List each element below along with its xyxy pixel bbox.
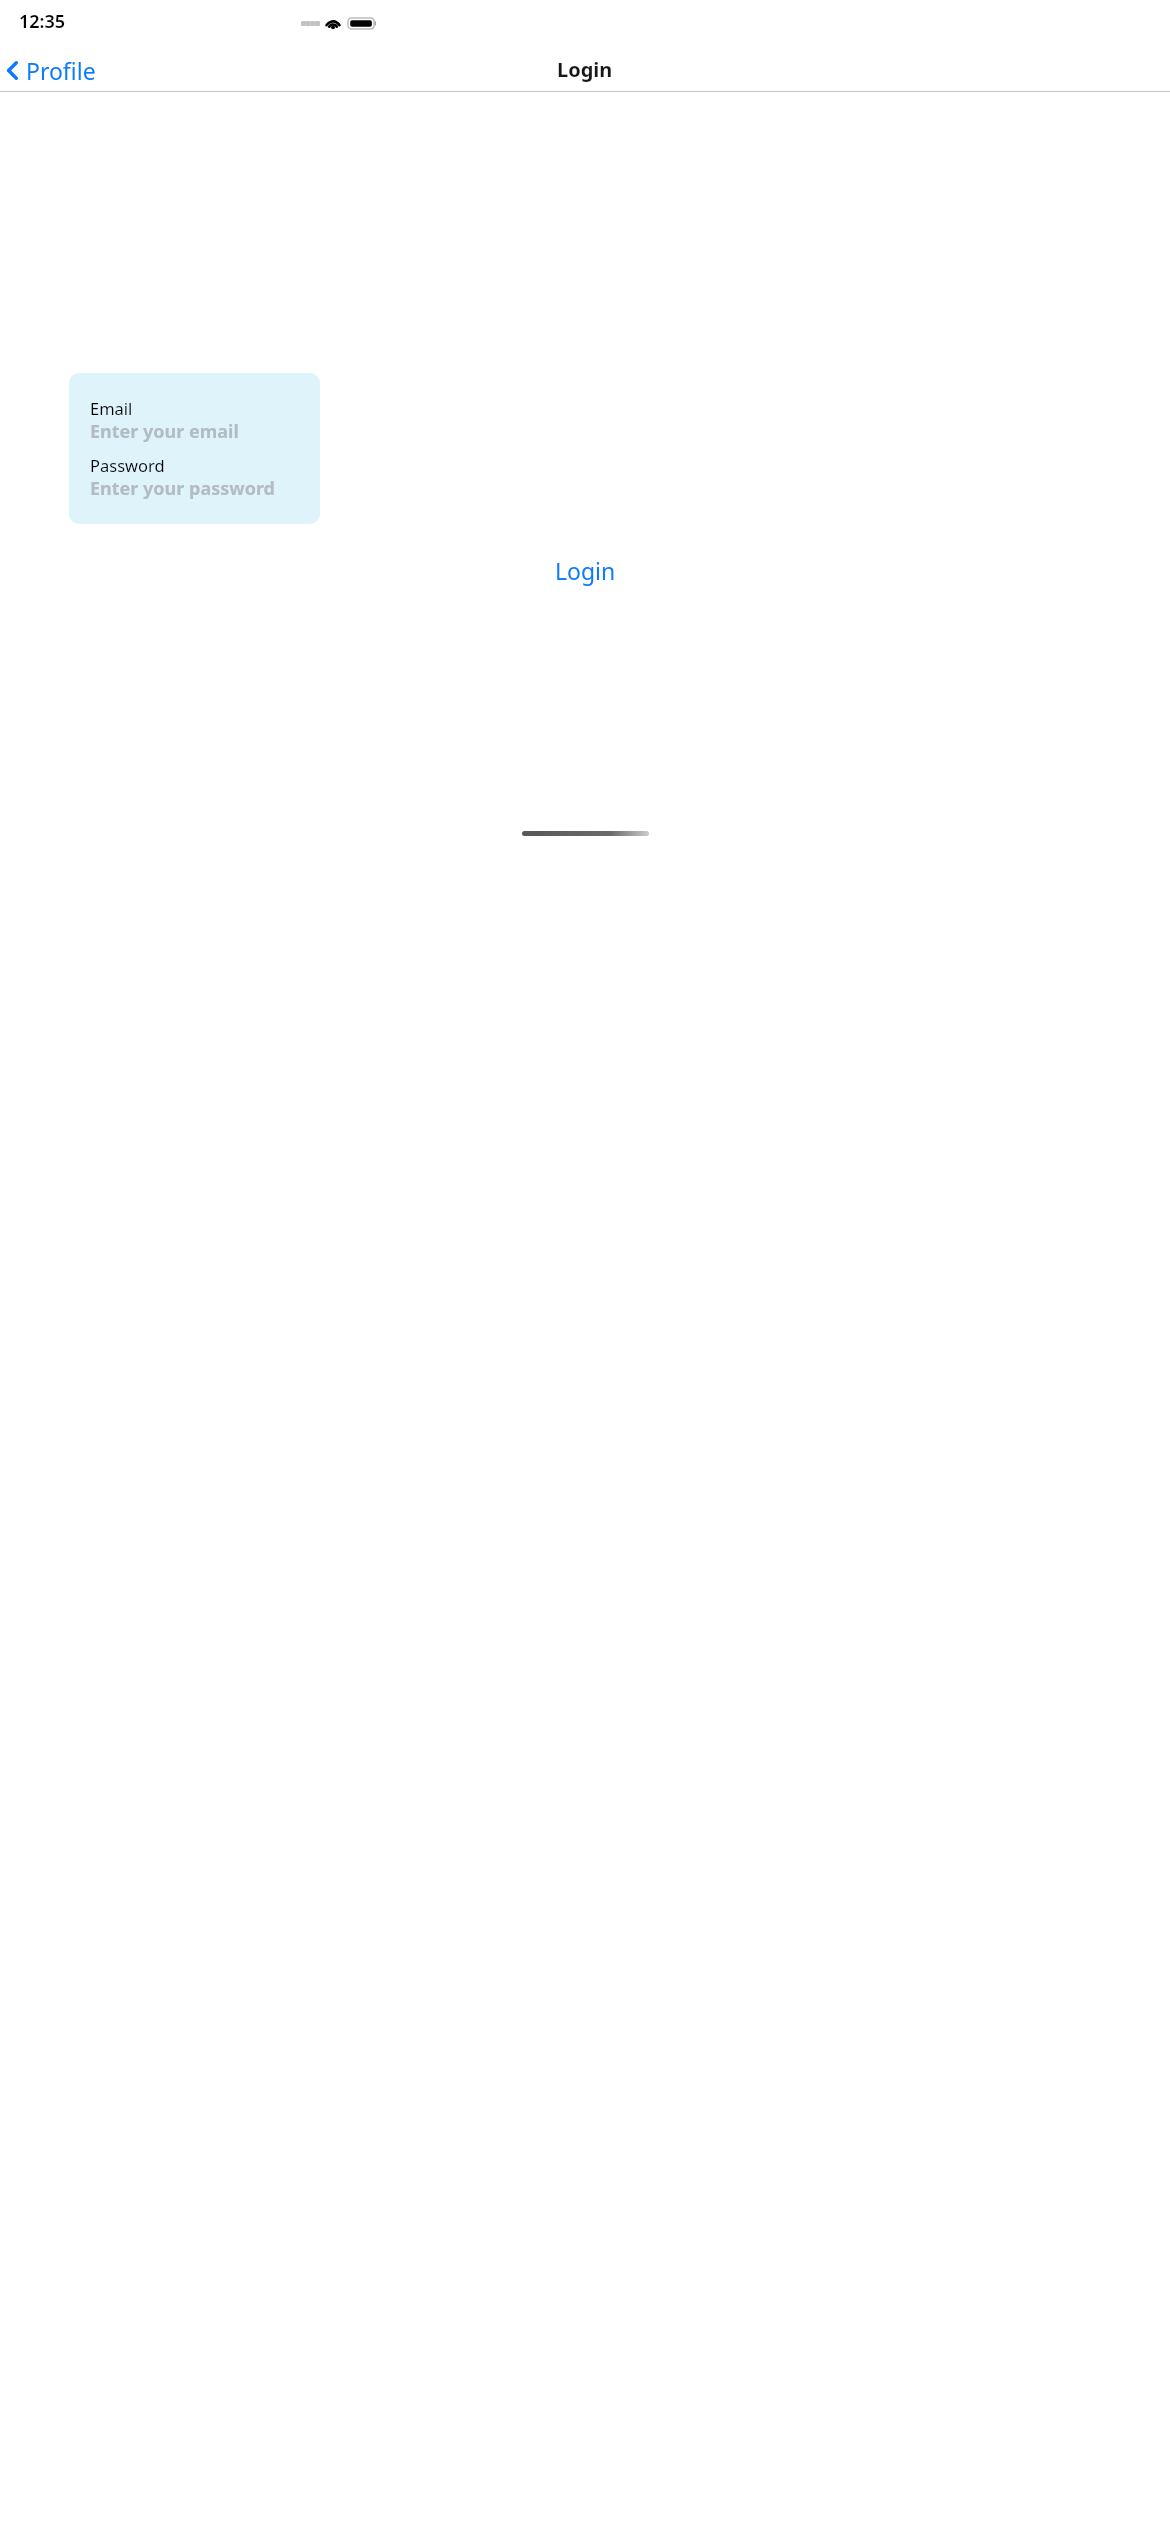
- staticText: Profile: [26, 55, 96, 86]
- button[interactable]: Enter your password: [90, 476, 275, 501]
- button[interactable]: Login: [531, 548, 640, 593]
- button[interactable]: Email: [90, 397, 133, 419]
- staticText: Login: [555, 555, 616, 586]
- button[interactable]: Password: [90, 454, 165, 476]
- button[interactable]: Back: [0, 54, 108, 86]
- button[interactable]: Enter your email: [90, 419, 239, 444]
- staticText: 12:35: [19, 9, 66, 34]
- staticText: Login: [557, 56, 613, 83]
- other: Back: [7, 61, 18, 80]
